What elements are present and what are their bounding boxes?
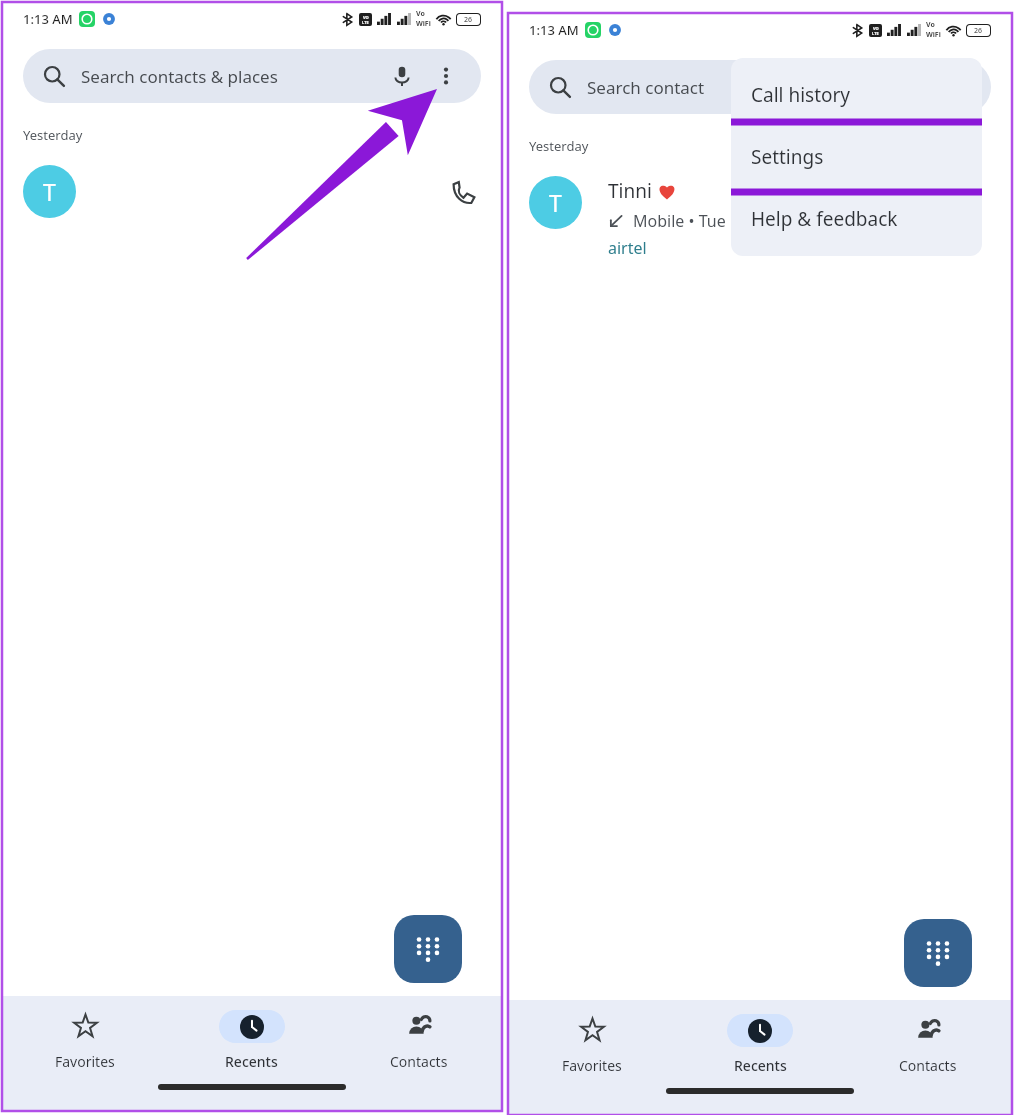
button[interactable]: Search contact [529, 60, 991, 114]
staticText: Favorites [562, 1056, 622, 1075]
staticText: Search contacts & places [81, 65, 278, 88]
staticText: Settings [751, 144, 824, 170]
button[interactable]: Contacts [844, 1000, 1012, 1088]
staticText: Yesterday [23, 126, 83, 144]
staticText: Yesterday [529, 137, 589, 155]
button[interactable]: Settings [731, 126, 982, 188]
button[interactable]: Call history [731, 64, 982, 126]
button[interactable]: Help & feedback [731, 188, 982, 250]
staticText: Mobile • Tue [633, 210, 726, 232]
staticText: T [43, 176, 56, 207]
button[interactable]: More options [431, 61, 461, 91]
button[interactable]: Dialpad [394, 915, 462, 983]
button[interactable]: Voice search [387, 61, 417, 91]
staticText: 1:13 AM [23, 10, 73, 28]
staticText: LTE [872, 31, 879, 36]
staticText: T [549, 187, 562, 218]
staticText: 26 [464, 15, 473, 25]
staticText: Help & feedback [751, 206, 898, 232]
staticText: Search contact [587, 76, 705, 99]
button[interactable]: Recents [168, 996, 335, 1084]
button[interactable]: Dialpad [904, 919, 972, 987]
staticText: Recents [225, 1052, 278, 1071]
staticText: Vo [416, 9, 425, 19]
staticText: airtel [608, 237, 647, 259]
staticText: VO [873, 26, 879, 31]
staticText: LTE [362, 20, 369, 25]
staticText: 26 [974, 26, 983, 36]
staticText: WiFi [926, 30, 941, 40]
staticText: Contacts [899, 1056, 957, 1075]
staticText: 1:13 AM [529, 21, 579, 39]
staticText: WiFi [416, 19, 431, 29]
staticText: Recents [734, 1056, 787, 1075]
staticText: Contacts [390, 1052, 448, 1071]
button[interactable]: Contacts [335, 996, 502, 1084]
button[interactable]: T [2, 165, 502, 265]
button[interactable]: Call [447, 175, 481, 209]
button[interactable]: T [508, 176, 1012, 276]
staticText: Favorites [55, 1052, 115, 1071]
button[interactable]: Search contacts & places [23, 49, 481, 103]
staticText: Vo [926, 20, 935, 30]
staticText: Tinni [608, 178, 657, 204]
button[interactable]: Favorites [508, 1000, 676, 1088]
staticText: VO [363, 15, 369, 20]
staticText: Call history [751, 82, 851, 108]
button[interactable]: Favorites [2, 996, 168, 1084]
button[interactable]: Recents [676, 1000, 844, 1088]
